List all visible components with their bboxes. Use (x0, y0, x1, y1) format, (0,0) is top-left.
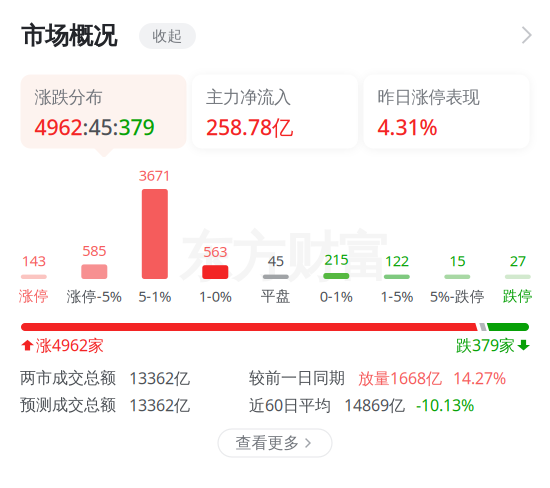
staticText: 5-1% (138, 286, 171, 306)
button[interactable]: 查看市场概况详情 (515, 23, 539, 47)
staticText: 585 (82, 241, 106, 260)
staticText: 涨停 (19, 287, 49, 305)
staticText: 近60日平均 (249, 394, 331, 416)
staticText: 市场概况 (21, 21, 117, 50)
staticText: 跌停 (503, 287, 533, 305)
staticText: 15 (449, 251, 465, 270)
staticText: 东方财富 (179, 225, 391, 290)
button[interactable]: 昨日涨停表现 (363, 74, 529, 148)
staticText: 215 (324, 249, 348, 269)
staticText: 3671 (139, 165, 171, 185)
staticText: 涨停-5% (67, 286, 122, 306)
staticText: 27 (510, 251, 526, 270)
staticText: 1-5% (380, 286, 413, 306)
staticText: 143 (22, 251, 46, 270)
staticText: 14869亿 (344, 394, 405, 416)
staticText: 1-0% (199, 286, 232, 306)
staticText: 较前一日同期 (249, 368, 345, 388)
staticText: 主力净流入 (206, 86, 291, 108)
staticText: 4962 (34, 113, 82, 141)
staticText: 0-1% (320, 286, 353, 306)
staticText: 收起 (152, 27, 182, 45)
staticText: 14.27% (453, 367, 506, 389)
button[interactable]: 收起 (139, 23, 196, 49)
staticText: 4.31% (377, 113, 437, 141)
staticText: 13362亿 (129, 394, 190, 416)
staticText: -10.13% (416, 394, 474, 416)
staticText: 122 (385, 251, 409, 270)
staticText: 379 (118, 113, 154, 141)
staticText: 昨日涨停表现 (377, 86, 479, 108)
staticText: 涨4962家 (36, 334, 104, 356)
staticText: :45: (82, 113, 118, 141)
staticText: 放量1668亿 (358, 367, 442, 389)
staticText: 45 (268, 251, 284, 270)
button[interactable]: 主力净流入 (192, 74, 358, 148)
staticText: 涨跌分布 (34, 86, 102, 108)
staticText: 258.78亿 (206, 113, 293, 141)
staticText: 563 (203, 241, 227, 261)
staticText: 两市成交总额 (20, 368, 116, 388)
staticText: 平盘 (261, 287, 291, 305)
staticText: 跌379家 (456, 334, 515, 356)
button[interactable]: 涨跌分布 (20, 74, 186, 148)
staticText: 查看更多 (235, 433, 299, 453)
button[interactable]: 查看更多 (218, 429, 332, 457)
staticText: 预测成交总额 (20, 395, 116, 415)
staticText: 13362亿 (129, 367, 190, 389)
staticText: 5%-跌停 (430, 286, 485, 306)
